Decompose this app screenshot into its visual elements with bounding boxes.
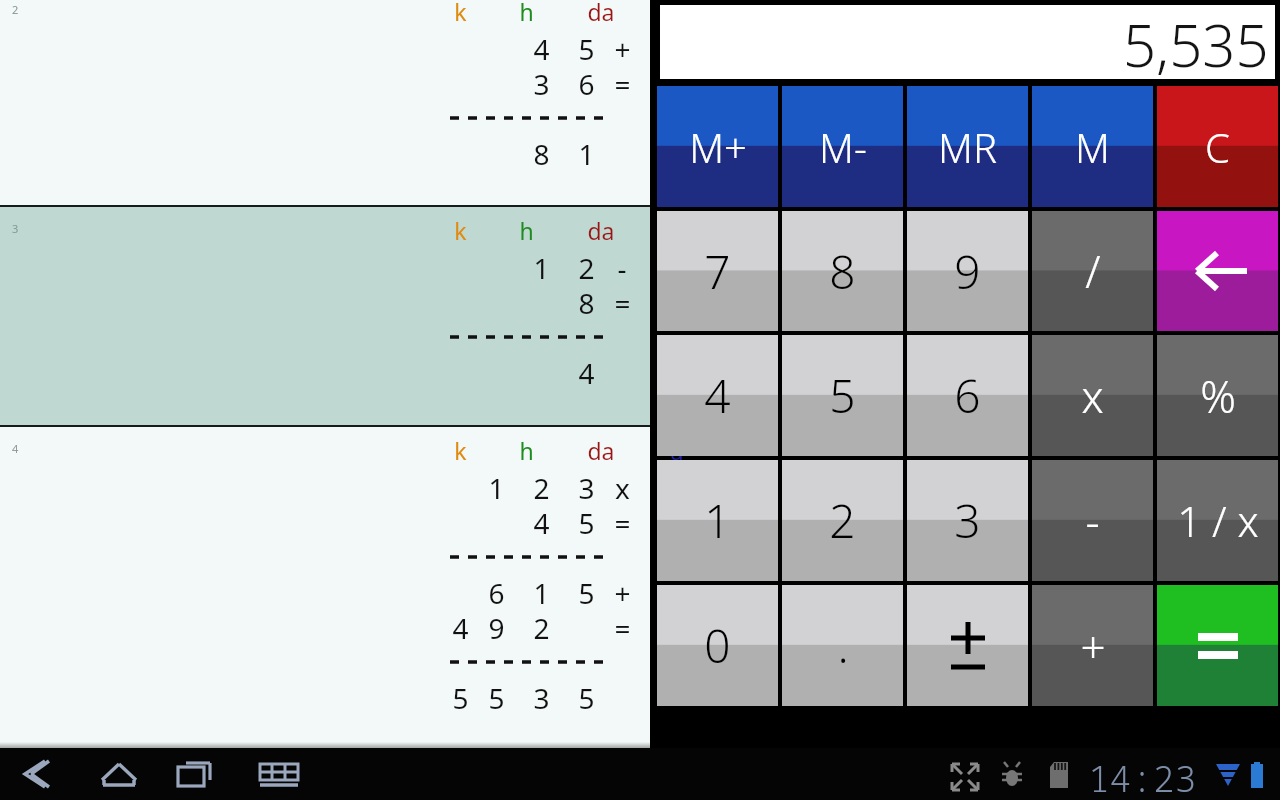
staticText: 5 [488, 679, 505, 717]
button[interactable]: Recents [166, 748, 228, 800]
staticText: 5 [578, 574, 595, 612]
button[interactable]: 5 [782, 335, 903, 456]
staticText: = [614, 65, 631, 103]
staticText: 1 [704, 489, 731, 552]
button[interactable]: - [1032, 460, 1153, 581]
staticText: 1 / x [1177, 492, 1259, 549]
button[interactable]: 9 [907, 211, 1028, 331]
button[interactable]: Equals [1157, 585, 1278, 706]
staticText: 1 [533, 249, 550, 287]
staticText: 2 [533, 469, 550, 507]
staticText: da [587, 0, 615, 27]
staticText: 7 [704, 240, 731, 303]
staticText: h [519, 0, 534, 27]
button[interactable]: Back [8, 748, 70, 800]
staticText: 6 [954, 364, 981, 427]
staticText: C [1205, 120, 1230, 174]
staticText: 5 [578, 679, 595, 717]
button[interactable]: 3 [907, 460, 1028, 581]
button[interactable]: 0 [657, 585, 778, 706]
button[interactable]: Home [88, 748, 150, 800]
staticText: 8 [829, 240, 856, 303]
button[interactable]: MR [907, 86, 1028, 207]
staticText: 5 [578, 504, 595, 542]
staticText: 1 [578, 135, 595, 173]
button[interactable]: 4 [657, 335, 778, 456]
staticText: da [587, 435, 615, 466]
staticText: 3 [954, 489, 981, 552]
staticText: x [1081, 366, 1104, 426]
staticText: 6 [578, 65, 595, 103]
button[interactable]: 8 [782, 211, 903, 331]
staticText: 2 [829, 489, 856, 552]
staticText: + [614, 574, 631, 612]
staticText: 8 [533, 135, 550, 173]
button[interactable]: 2 [782, 460, 903, 581]
button[interactable]: 1 [657, 460, 778, 581]
staticText: k [454, 435, 467, 466]
staticText: = [614, 609, 631, 647]
staticText: 14:23 [1088, 754, 1197, 800]
staticText: h [519, 435, 534, 466]
staticText: + [614, 30, 631, 68]
staticText: MR [938, 120, 997, 174]
button[interactable]: x [1032, 335, 1153, 456]
staticText: 2 [12, 2, 19, 17]
button[interactable]: . [782, 585, 903, 706]
staticText: / [1085, 241, 1101, 301]
button[interactable]: 7 [657, 211, 778, 331]
button[interactable]: M- [782, 86, 903, 207]
staticText: = [614, 284, 631, 322]
button[interactable]: C [1157, 86, 1278, 207]
staticText: 3 [578, 469, 595, 507]
button[interactable]: 2 [0, 0, 650, 208]
button[interactable]: 3 [0, 207, 650, 425]
staticText: 5,535 [1123, 5, 1269, 79]
button[interactable]: Keyboard [248, 748, 310, 800]
staticText: 1 [488, 469, 505, 507]
staticText: k [454, 215, 467, 246]
button[interactable]: Plus minus [907, 585, 1028, 706]
staticText: 2 [533, 609, 550, 647]
staticText: 3 [533, 679, 550, 717]
button[interactable]: M+ [657, 86, 778, 207]
staticText: u [669, 435, 684, 466]
staticText: 8 [578, 284, 595, 322]
staticText: 4 [578, 354, 595, 392]
staticText: 3 [12, 221, 19, 236]
staticText: + [1080, 616, 1106, 676]
staticText: M [1075, 120, 1110, 174]
staticText: M+ [689, 120, 747, 174]
staticText: 5 [578, 30, 595, 68]
staticText: 4 [533, 30, 550, 68]
staticText: 1 [533, 574, 550, 612]
staticText: x [615, 469, 630, 507]
button[interactable]: 4 [0, 427, 650, 727]
staticText: k [454, 0, 467, 27]
staticText: % [1200, 366, 1236, 426]
staticText: 2 [578, 249, 595, 287]
staticText: 3 [533, 65, 550, 103]
staticText: 4 [12, 441, 19, 456]
button[interactable]: 1 / x [1157, 460, 1278, 581]
staticText: . [837, 614, 849, 677]
staticText: 0 [704, 614, 731, 677]
button[interactable]: % [1157, 335, 1278, 456]
staticText: 9 [488, 609, 505, 647]
button[interactable]: + [1032, 585, 1153, 706]
staticText: - [617, 249, 627, 287]
staticText: - [1085, 491, 1100, 551]
staticText: 4 [533, 504, 550, 542]
staticText: = [614, 504, 631, 542]
button[interactable]: 6 [907, 335, 1028, 456]
staticText: 5 [829, 364, 856, 427]
button[interactable]: Backspace [1157, 211, 1278, 331]
button[interactable]: / [1032, 211, 1153, 331]
button[interactable]: Fullscreen [948, 760, 982, 794]
staticText: 4 [704, 364, 731, 427]
staticText: 4 [452, 609, 469, 647]
button[interactable]: M [1032, 86, 1153, 207]
staticText: 5 [452, 679, 469, 717]
staticText: da [587, 215, 615, 246]
